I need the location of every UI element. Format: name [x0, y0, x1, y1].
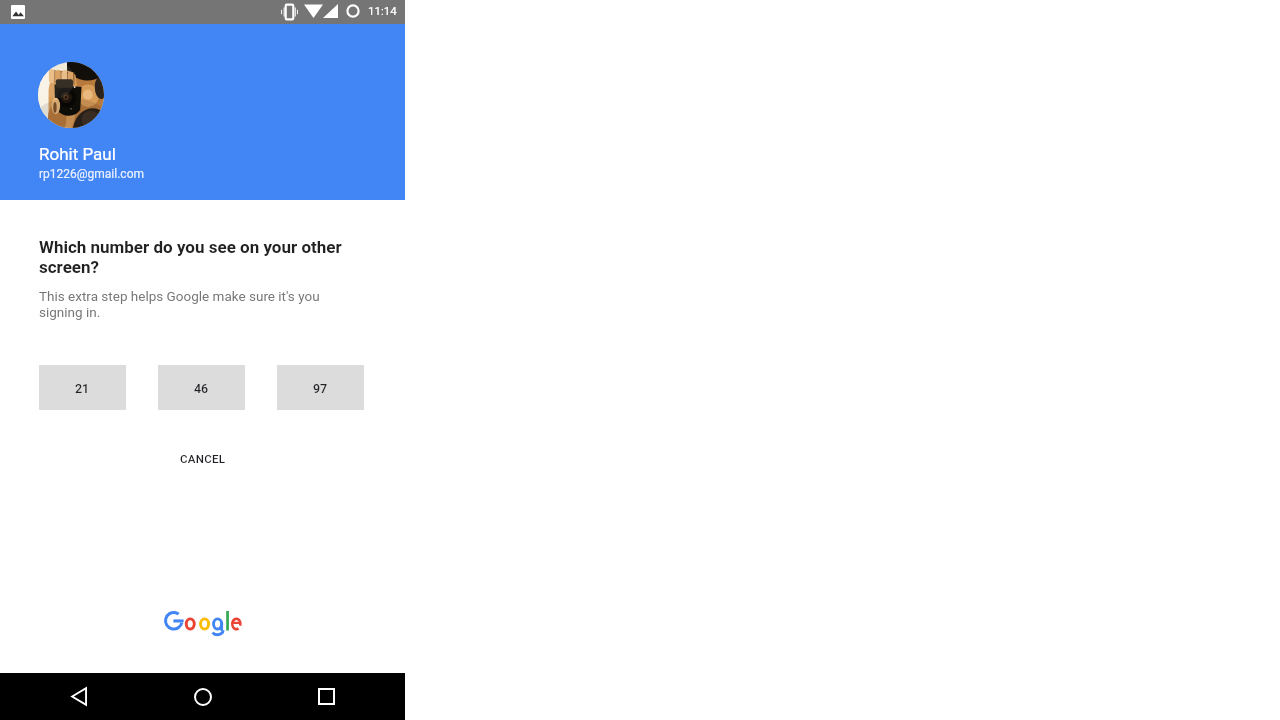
button[interactable]: CANCEL [168, 444, 238, 473]
button[interactable]: Account photo [38, 62, 104, 128]
staticText: This extra step helps Google make sure i… [39, 288, 324, 320]
button[interactable]: Home [170, 673, 235, 720]
button[interactable]: 97 [277, 365, 364, 410]
staticText: 97 [313, 381, 328, 396]
staticText: CANCEL [180, 452, 226, 465]
staticText: 11:14 [368, 4, 397, 17]
staticText: rp1226@gmail.com [39, 167, 144, 181]
button[interactable]: Rohit Paul [39, 144, 144, 181]
staticText: Which number do you see on your other sc… [39, 237, 346, 277]
staticText: 21 [75, 381, 90, 396]
staticText: Rohit Paul [39, 144, 116, 164]
button[interactable]: 46 [158, 365, 245, 410]
button[interactable]: Recent apps [294, 673, 358, 720]
button[interactable]: 21 [39, 365, 126, 410]
staticText: 46 [194, 381, 209, 396]
button[interactable]: Back [47, 673, 111, 720]
